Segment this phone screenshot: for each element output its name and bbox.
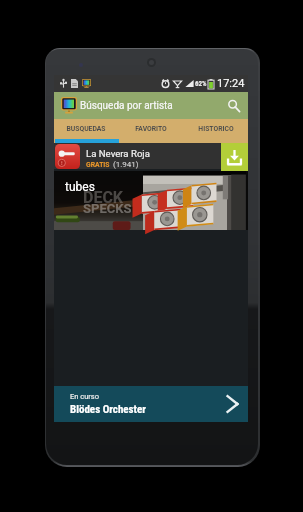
staticText: (1.941) xyxy=(113,160,139,169)
staticText: En curso xyxy=(70,392,100,401)
button[interactable]: HISTORICO xyxy=(183,119,248,138)
staticText: La Nevera Roja xyxy=(86,148,150,159)
staticText: BUSQUEDAS xyxy=(66,125,106,133)
staticText: HISTORICO xyxy=(198,125,234,133)
staticText: tubes xyxy=(65,180,95,194)
staticText: 62% xyxy=(195,80,207,88)
button[interactable]: Búsqueda por artista xyxy=(54,92,248,119)
staticText: SPECKS xyxy=(83,201,132,216)
staticText: FAVORITO xyxy=(135,125,167,133)
staticText: Búsqueda por artista xyxy=(80,100,173,112)
button[interactable]: DECK xyxy=(54,171,248,230)
staticText: Blödes Orchester xyxy=(70,403,146,416)
button[interactable]: BUSQUEDAS xyxy=(54,119,118,138)
button[interactable]: La Nevera Roja xyxy=(54,143,248,169)
button[interactable]: FAVORITO xyxy=(118,119,183,138)
staticText: GRATIS xyxy=(86,161,110,169)
button[interactable]: Search xyxy=(226,98,242,114)
button[interactable]: Download xyxy=(221,143,248,171)
staticText: DECK xyxy=(83,188,124,207)
staticText: 17:24 xyxy=(217,77,245,90)
button[interactable]: En curso xyxy=(54,386,248,422)
other: Open player xyxy=(226,395,239,413)
